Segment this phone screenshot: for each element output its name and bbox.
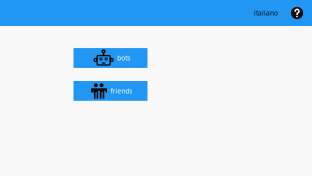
button[interactable]: Help [291, 7, 303, 19]
staticText: friends [110, 86, 132, 95]
button[interactable]: friends [73, 81, 147, 101]
staticText: italiano [254, 9, 278, 17]
button[interactable]: bots [73, 48, 147, 68]
staticText: bots [117, 54, 130, 62]
